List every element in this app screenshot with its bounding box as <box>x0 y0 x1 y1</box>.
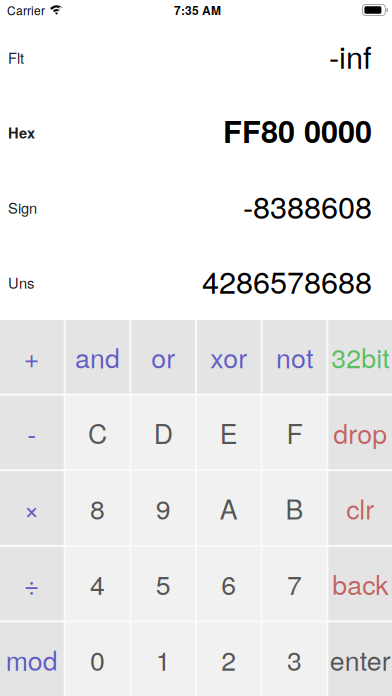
button[interactable]: 6 <box>197 547 261 620</box>
staticText: 3 <box>287 640 302 678</box>
staticText: 8 <box>90 489 105 527</box>
staticText: and <box>75 338 120 376</box>
button[interactable]: F <box>263 396 326 469</box>
staticText: -8388608 <box>243 183 372 227</box>
staticText: or <box>151 338 175 376</box>
button[interactable]: not <box>263 320 326 394</box>
staticText: Flt <box>8 47 24 68</box>
staticText: 32bit <box>331 338 389 376</box>
staticText: xor <box>210 338 247 376</box>
button[interactable]: and <box>66 320 129 394</box>
button[interactable]: 7 <box>263 547 326 620</box>
staticText: 9 <box>156 489 171 527</box>
button[interactable]: ÷ <box>0 547 64 620</box>
button[interactable]: 1 <box>131 622 195 696</box>
button[interactable]: 0 <box>66 622 129 696</box>
button[interactable]: A <box>197 471 261 545</box>
button[interactable]: 3 <box>263 622 326 696</box>
staticText: + <box>24 338 40 376</box>
staticText: 6 <box>221 564 236 603</box>
button[interactable]: mod <box>0 622 64 696</box>
button[interactable]: 8 <box>66 471 129 545</box>
staticText: E <box>220 413 238 451</box>
button[interactable]: E <box>197 396 261 469</box>
staticText: A <box>220 489 238 527</box>
staticText: drop <box>333 413 387 451</box>
staticText: × <box>24 489 40 527</box>
staticText: FF80 0000 <box>223 108 372 152</box>
button[interactable]: × <box>0 471 64 545</box>
button[interactable]: back <box>328 547 392 620</box>
staticText: mod <box>6 640 58 678</box>
button[interactable]: xor <box>197 320 261 394</box>
staticText: C <box>88 413 107 451</box>
staticText: F <box>286 413 302 451</box>
staticText: B <box>285 489 303 527</box>
staticText: not <box>276 338 313 376</box>
staticText: -inf <box>329 33 372 77</box>
staticText: clr <box>346 489 374 527</box>
staticText: 4286578688 <box>202 258 372 302</box>
staticText: Uns <box>8 272 34 293</box>
staticText: D <box>154 413 173 451</box>
staticText: 7 <box>287 564 302 603</box>
button[interactable]: or <box>131 320 195 394</box>
staticText: 2 <box>221 640 236 678</box>
button[interactable]: clr <box>328 471 392 545</box>
staticText: 7:35 AM <box>174 1 221 19</box>
button[interactable]: - <box>0 396 64 469</box>
button[interactable]: C <box>66 396 129 469</box>
button[interactable]: 4 <box>66 547 129 620</box>
button[interactable]: 5 <box>131 547 195 620</box>
staticText: 4 <box>90 564 105 603</box>
button[interactable]: + <box>0 320 64 394</box>
staticText: back <box>332 564 388 603</box>
staticText: 1 <box>156 640 171 678</box>
staticText: 0 <box>90 640 105 678</box>
button[interactable]: 32bit <box>328 320 392 394</box>
staticText: enter <box>330 640 391 678</box>
button[interactable]: enter <box>328 622 392 696</box>
button[interactable]: D <box>131 396 195 469</box>
staticText: - <box>27 413 36 451</box>
staticText: 5 <box>156 564 171 603</box>
staticText: Sign <box>8 197 37 218</box>
button[interactable]: 9 <box>131 471 195 545</box>
staticText: Hex <box>8 122 35 143</box>
button[interactable]: 2 <box>197 622 261 696</box>
button[interactable]: B <box>263 471 326 545</box>
staticText: Carrier <box>7 1 45 19</box>
button[interactable]: drop <box>328 396 392 469</box>
staticText: ÷ <box>24 564 40 603</box>
